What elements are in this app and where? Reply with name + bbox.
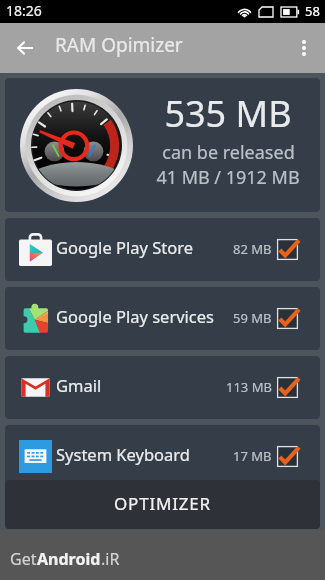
staticText: 535 MB (164, 89, 292, 138)
staticText: can be released (162, 140, 295, 165)
button[interactable]: Select Google Play Store (276, 238, 299, 261)
staticText: 58 (305, 2, 320, 20)
button[interactable]: Google Play services (5, 287, 320, 350)
staticText: Google Play services (56, 305, 214, 327)
button[interactable]: Back (10, 33, 40, 63)
button[interactable]: 535 MB (5, 78, 320, 212)
staticText: RAM Opimizer (55, 32, 183, 58)
staticText: System Keyboard (56, 443, 190, 465)
staticText: Google Play Store (56, 236, 193, 258)
staticText: Gmail (56, 374, 102, 396)
staticText: Get (10, 548, 37, 570)
staticText: 18:26 (6, 1, 42, 20)
staticText: 113 MB (226, 378, 272, 396)
button[interactable]: Select System Keyboard (276, 445, 299, 468)
staticText: 17 MB (233, 447, 272, 465)
staticText: 59 MB (233, 309, 272, 327)
button[interactable]: More options (289, 33, 319, 63)
staticText: OPTIMIZER (114, 492, 211, 515)
button[interactable]: OPTIMIZER (5, 480, 320, 529)
button[interactable]: System Keyboard (5, 425, 320, 488)
button[interactable]: Gmail (5, 356, 320, 419)
staticText: .iR (101, 548, 120, 570)
staticText: 82 MB (233, 240, 272, 258)
button[interactable]: Select Gmail (276, 376, 299, 399)
button[interactable]: Select Google Play services (276, 307, 299, 330)
staticText: Android (37, 548, 101, 570)
button[interactable]: Google Play Store (5, 218, 320, 281)
staticText: 41 MB / 1912 MB (156, 165, 300, 190)
